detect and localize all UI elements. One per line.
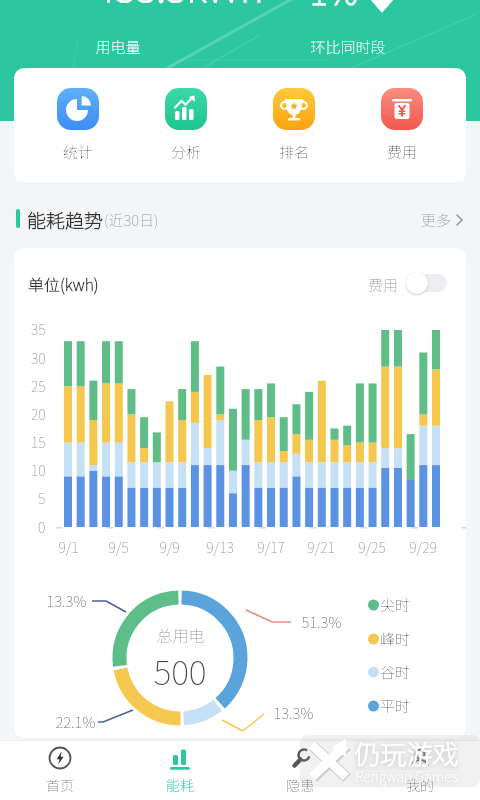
staticText: 10 <box>31 460 46 480</box>
staticText: 总用电 <box>156 623 205 646</box>
button[interactable]: 统计 <box>24 68 132 182</box>
staticText: 9/21 <box>307 537 335 557</box>
button[interactable]: 能耗 <box>120 740 240 800</box>
staticText: 9/17 <box>257 537 285 557</box>
staticText: 费用 <box>387 141 418 163</box>
staticText: 15 <box>31 432 46 452</box>
staticText: 隐患 <box>286 775 314 795</box>
staticText: 30 <box>31 348 46 368</box>
staticText: 0 <box>38 517 46 537</box>
staticText: (近30日) <box>104 209 159 231</box>
button[interactable]: 首页 <box>0 740 120 800</box>
button[interactable] <box>288 36 408 58</box>
staticText: 更多 <box>421 209 452 231</box>
staticText: 13.3% <box>46 590 87 612</box>
button[interactable]: 费用 <box>348 68 456 182</box>
staticText: 51.3% <box>301 611 342 633</box>
staticText: 仍玩游戏 <box>354 734 459 770</box>
staticText: 用电量 <box>95 36 141 58</box>
staticText: 我的 <box>406 775 434 795</box>
staticText: 能耗趋势 <box>27 206 104 234</box>
button[interactable]: 隐患 <box>240 740 360 800</box>
staticText: 1% <box>310 0 358 15</box>
staticText: 单位(kwh) <box>28 272 99 295</box>
button[interactable]: 排名 <box>240 68 348 182</box>
button[interactable]: 我的 <box>360 740 480 800</box>
staticText: 22.1% <box>55 711 96 733</box>
staticText: 433.3kWh <box>94 0 264 14</box>
staticText: 9/9 <box>159 537 180 557</box>
button[interactable] <box>407 274 447 292</box>
staticText: 9/1 <box>58 537 79 557</box>
button[interactable] <box>58 36 178 58</box>
staticText: 9/25 <box>358 537 386 557</box>
staticText: 13.3% <box>273 702 314 724</box>
staticText: 统计 <box>63 141 94 163</box>
staticText: 峰时 <box>380 628 411 650</box>
staticText: 能耗 <box>166 775 194 795</box>
staticText: 20 <box>31 404 46 424</box>
staticText: 9/13 <box>206 537 234 557</box>
staticText: 分析 <box>171 141 202 163</box>
staticText: 25 <box>31 376 46 396</box>
staticText: 尖时 <box>380 594 411 616</box>
staticText: 平时 <box>380 695 411 717</box>
staticText: 500 <box>153 646 207 690</box>
button[interactable]: 更多 <box>421 209 464 231</box>
staticText: 9/29 <box>409 537 437 557</box>
staticText: 首页 <box>46 775 74 795</box>
staticText: Rengwan Games <box>355 766 458 786</box>
staticText: 35 <box>31 319 46 339</box>
staticText: 环比同时段 <box>310 36 386 58</box>
staticText: 排名 <box>279 141 310 163</box>
staticText: 5 <box>38 488 46 508</box>
staticText: 谷时 <box>380 661 411 683</box>
button[interactable]: 分析 <box>132 68 240 182</box>
staticText: 9/5 <box>108 537 129 557</box>
staticText: 费用 <box>368 274 399 296</box>
